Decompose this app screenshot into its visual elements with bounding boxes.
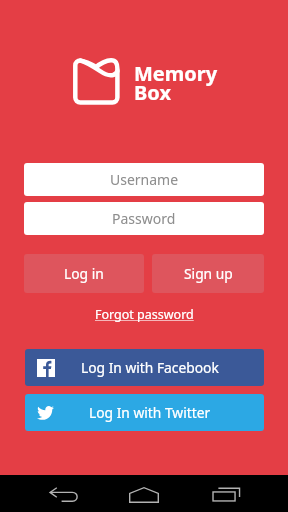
staticText: Sign up	[184, 264, 233, 283]
button[interactable]: Log In with Facebook	[25, 349, 264, 386]
button[interactable]: Sign up	[152, 254, 264, 293]
button[interactable]: Username	[24, 163, 264, 196]
button[interactable]: Log in	[24, 254, 144, 293]
staticText: Password	[112, 209, 176, 228]
staticText: Username	[110, 170, 179, 189]
button[interactable]: Forgot password	[89, 305, 200, 324]
staticText: Log In with Facebook	[81, 358, 219, 377]
button[interactable]: Home	[104, 475, 184, 512]
staticText: Log in	[64, 264, 104, 283]
staticText: Log In with Twitter	[89, 403, 211, 422]
staticText: Memory	[134, 60, 218, 87]
staticText: Forgot password	[95, 306, 194, 323]
staticText: Box	[134, 79, 171, 106]
button[interactable]: Back	[24, 475, 104, 512]
button[interactable]: Log In with Twitter	[25, 394, 264, 431]
button[interactable]: Password	[24, 202, 264, 235]
button[interactable]: Recent apps	[186, 475, 266, 512]
